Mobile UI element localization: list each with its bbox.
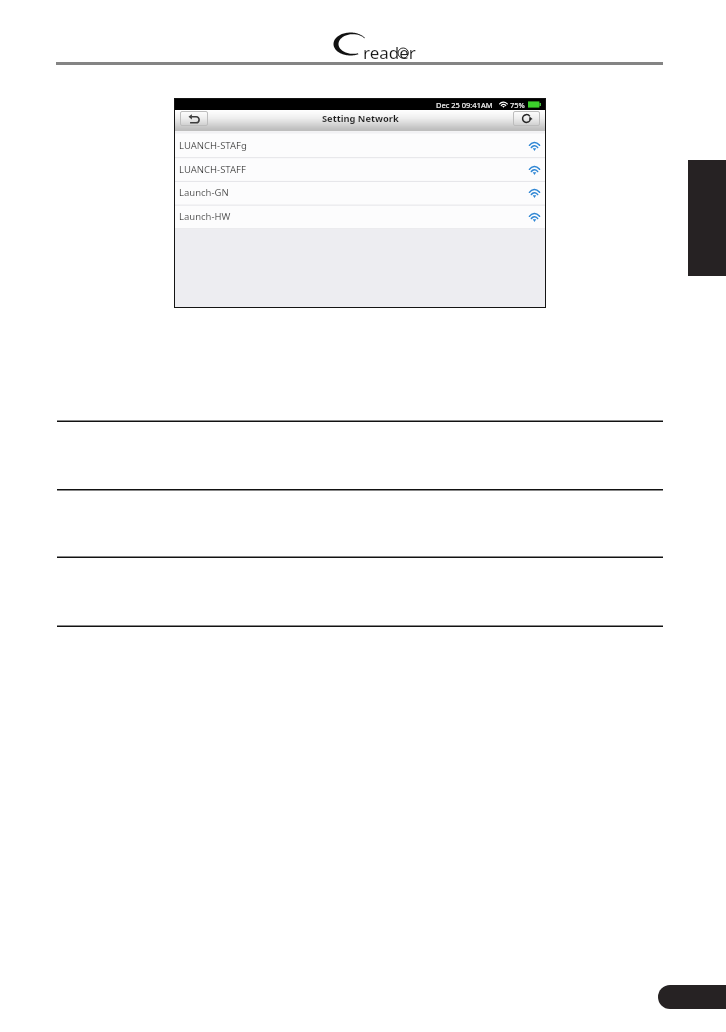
button[interactable]: Launch-HW [175, 205, 545, 228]
staticText: Setting Network [322, 112, 399, 125]
button[interactable]: LUANCH-STAFg [175, 134, 545, 157]
button[interactable]: Back [180, 111, 208, 126]
button[interactable]: Launch-GN [175, 181, 545, 204]
staticText: 75% [510, 100, 525, 110]
staticText: LUANCH-STAFF [179, 163, 246, 176]
staticText: Dec 25 09:41AM [436, 100, 493, 110]
button[interactable]: Refresh [513, 111, 540, 126]
staticText: reader [363, 41, 416, 64]
staticText: LUANCH-STAFg [179, 139, 247, 152]
button[interactable]: LUANCH-STAFF [175, 158, 545, 181]
staticText: Launch-GN [179, 186, 229, 199]
staticText: Launch-HW [179, 210, 231, 223]
